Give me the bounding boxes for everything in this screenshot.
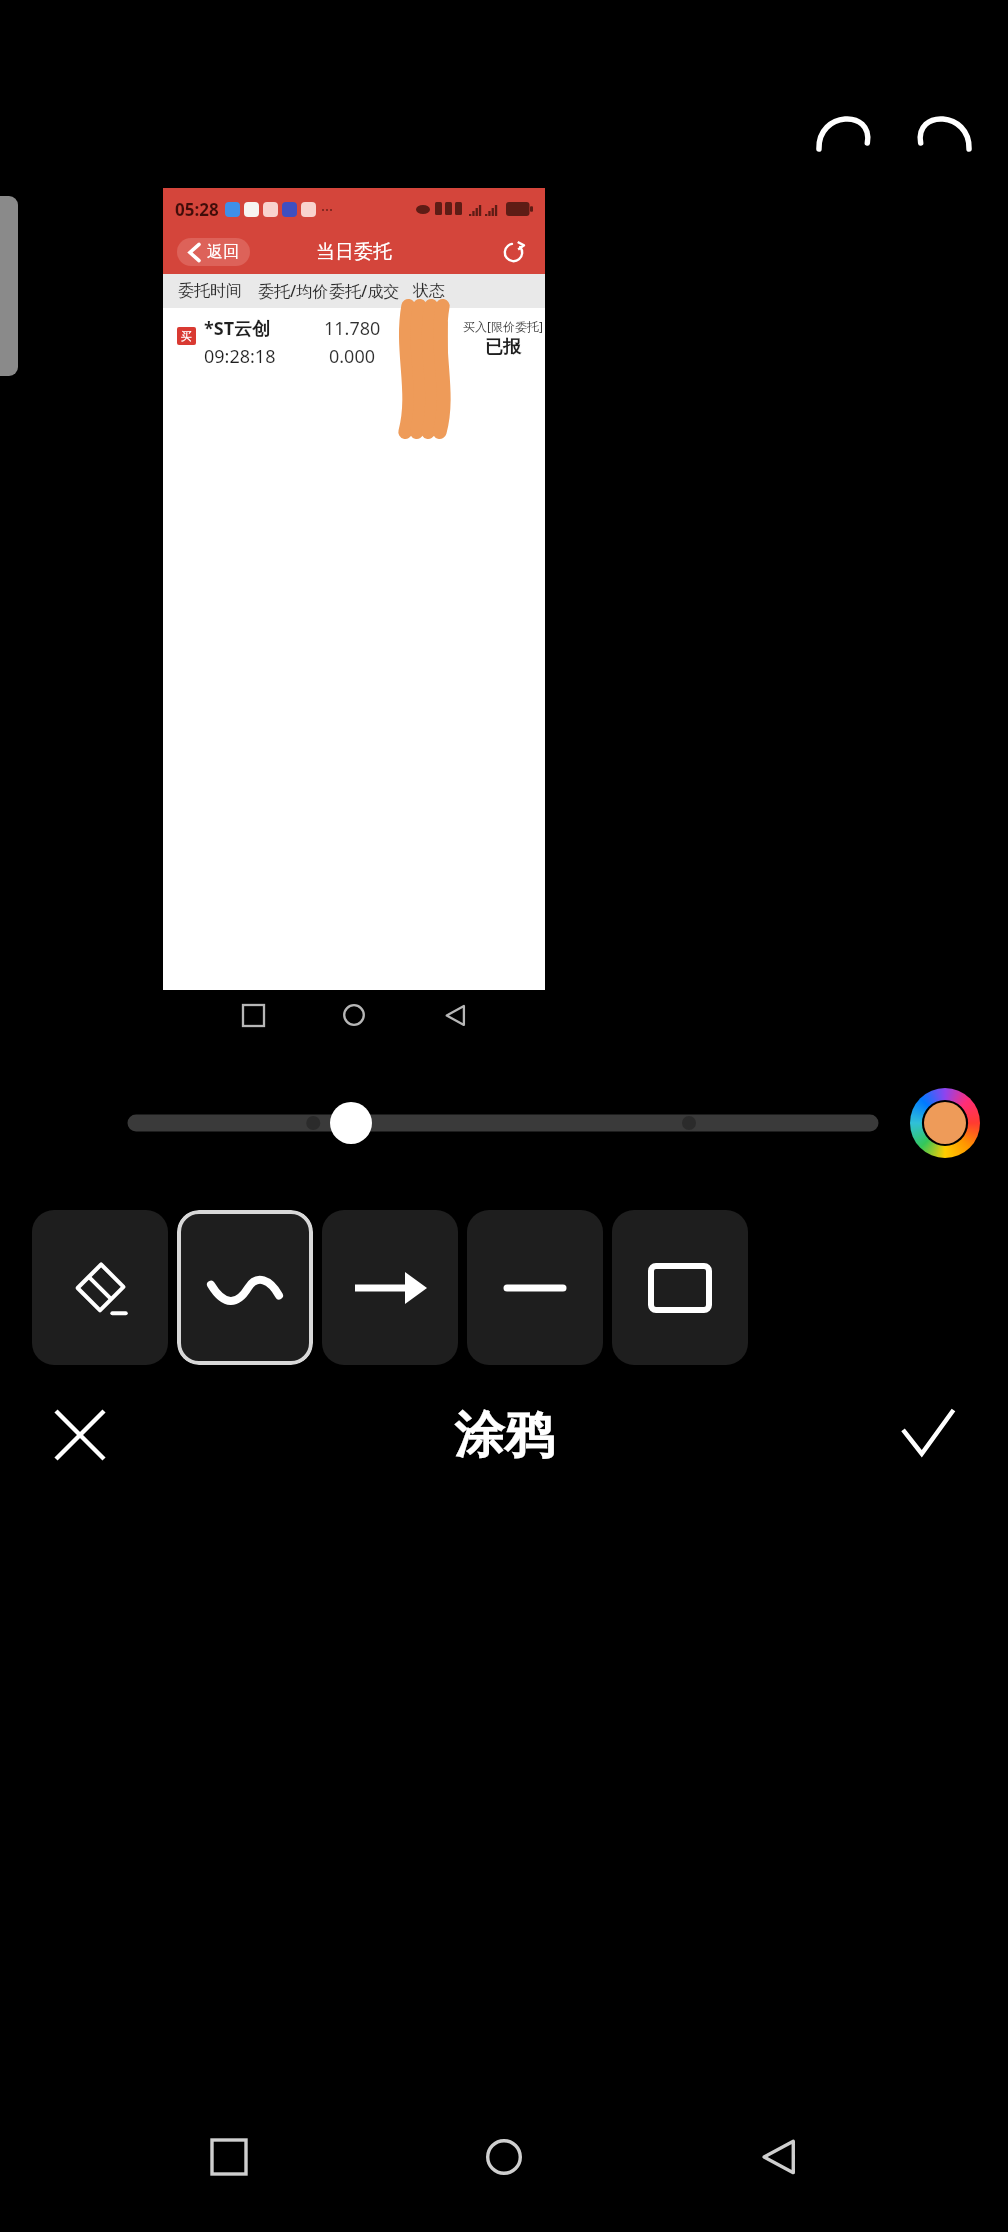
staticText: ··· [321, 199, 334, 219]
staticText: 返回 [207, 242, 239, 262]
button[interactable] [128, 1087, 878, 1159]
button[interactable]: Color picker [910, 1088, 980, 1158]
staticText: 状态 [413, 281, 445, 301]
button[interactable]: Cancel [0, 1375, 160, 1495]
button[interactable]: Line [467, 1210, 603, 1365]
staticText: 当日委托 [316, 240, 392, 264]
staticText: 涂鸦 [454, 1404, 554, 1467]
button[interactable]: Rectangle [612, 1210, 748, 1365]
staticText: 11.780 [324, 316, 381, 341]
button[interactable]: Free draw [177, 1210, 313, 1365]
button[interactable]: Eraser [32, 1210, 168, 1365]
staticText: 委托时间 [178, 281, 242, 301]
staticText: *ST云创 [204, 316, 271, 341]
button[interactable]: Refresh [497, 236, 529, 268]
staticText: 0.000 [329, 344, 376, 369]
button[interactable]: Arrow [322, 1210, 458, 1365]
button[interactable]: Home [458, 2111, 550, 2203]
button[interactable]: Undo [806, 92, 884, 170]
button[interactable]: 买 [163, 308, 545, 386]
button[interactable]: Done [848, 1375, 1008, 1495]
staticText: 买入[限价委托] [463, 318, 543, 334]
staticText: 委托/均价 [258, 280, 329, 302]
staticText: 委托/成交 [329, 280, 400, 302]
button[interactable]: 返回 [177, 238, 250, 266]
button[interactable]: Back [733, 2111, 825, 2203]
button[interactable]: Recents [183, 2111, 275, 2203]
button[interactable]: Redo [904, 92, 982, 170]
staticText: 05:28 [175, 198, 219, 221]
staticText: 买 [181, 329, 192, 343]
staticText: 09:28:18 [204, 344, 276, 369]
staticText: 已报 [485, 336, 521, 359]
